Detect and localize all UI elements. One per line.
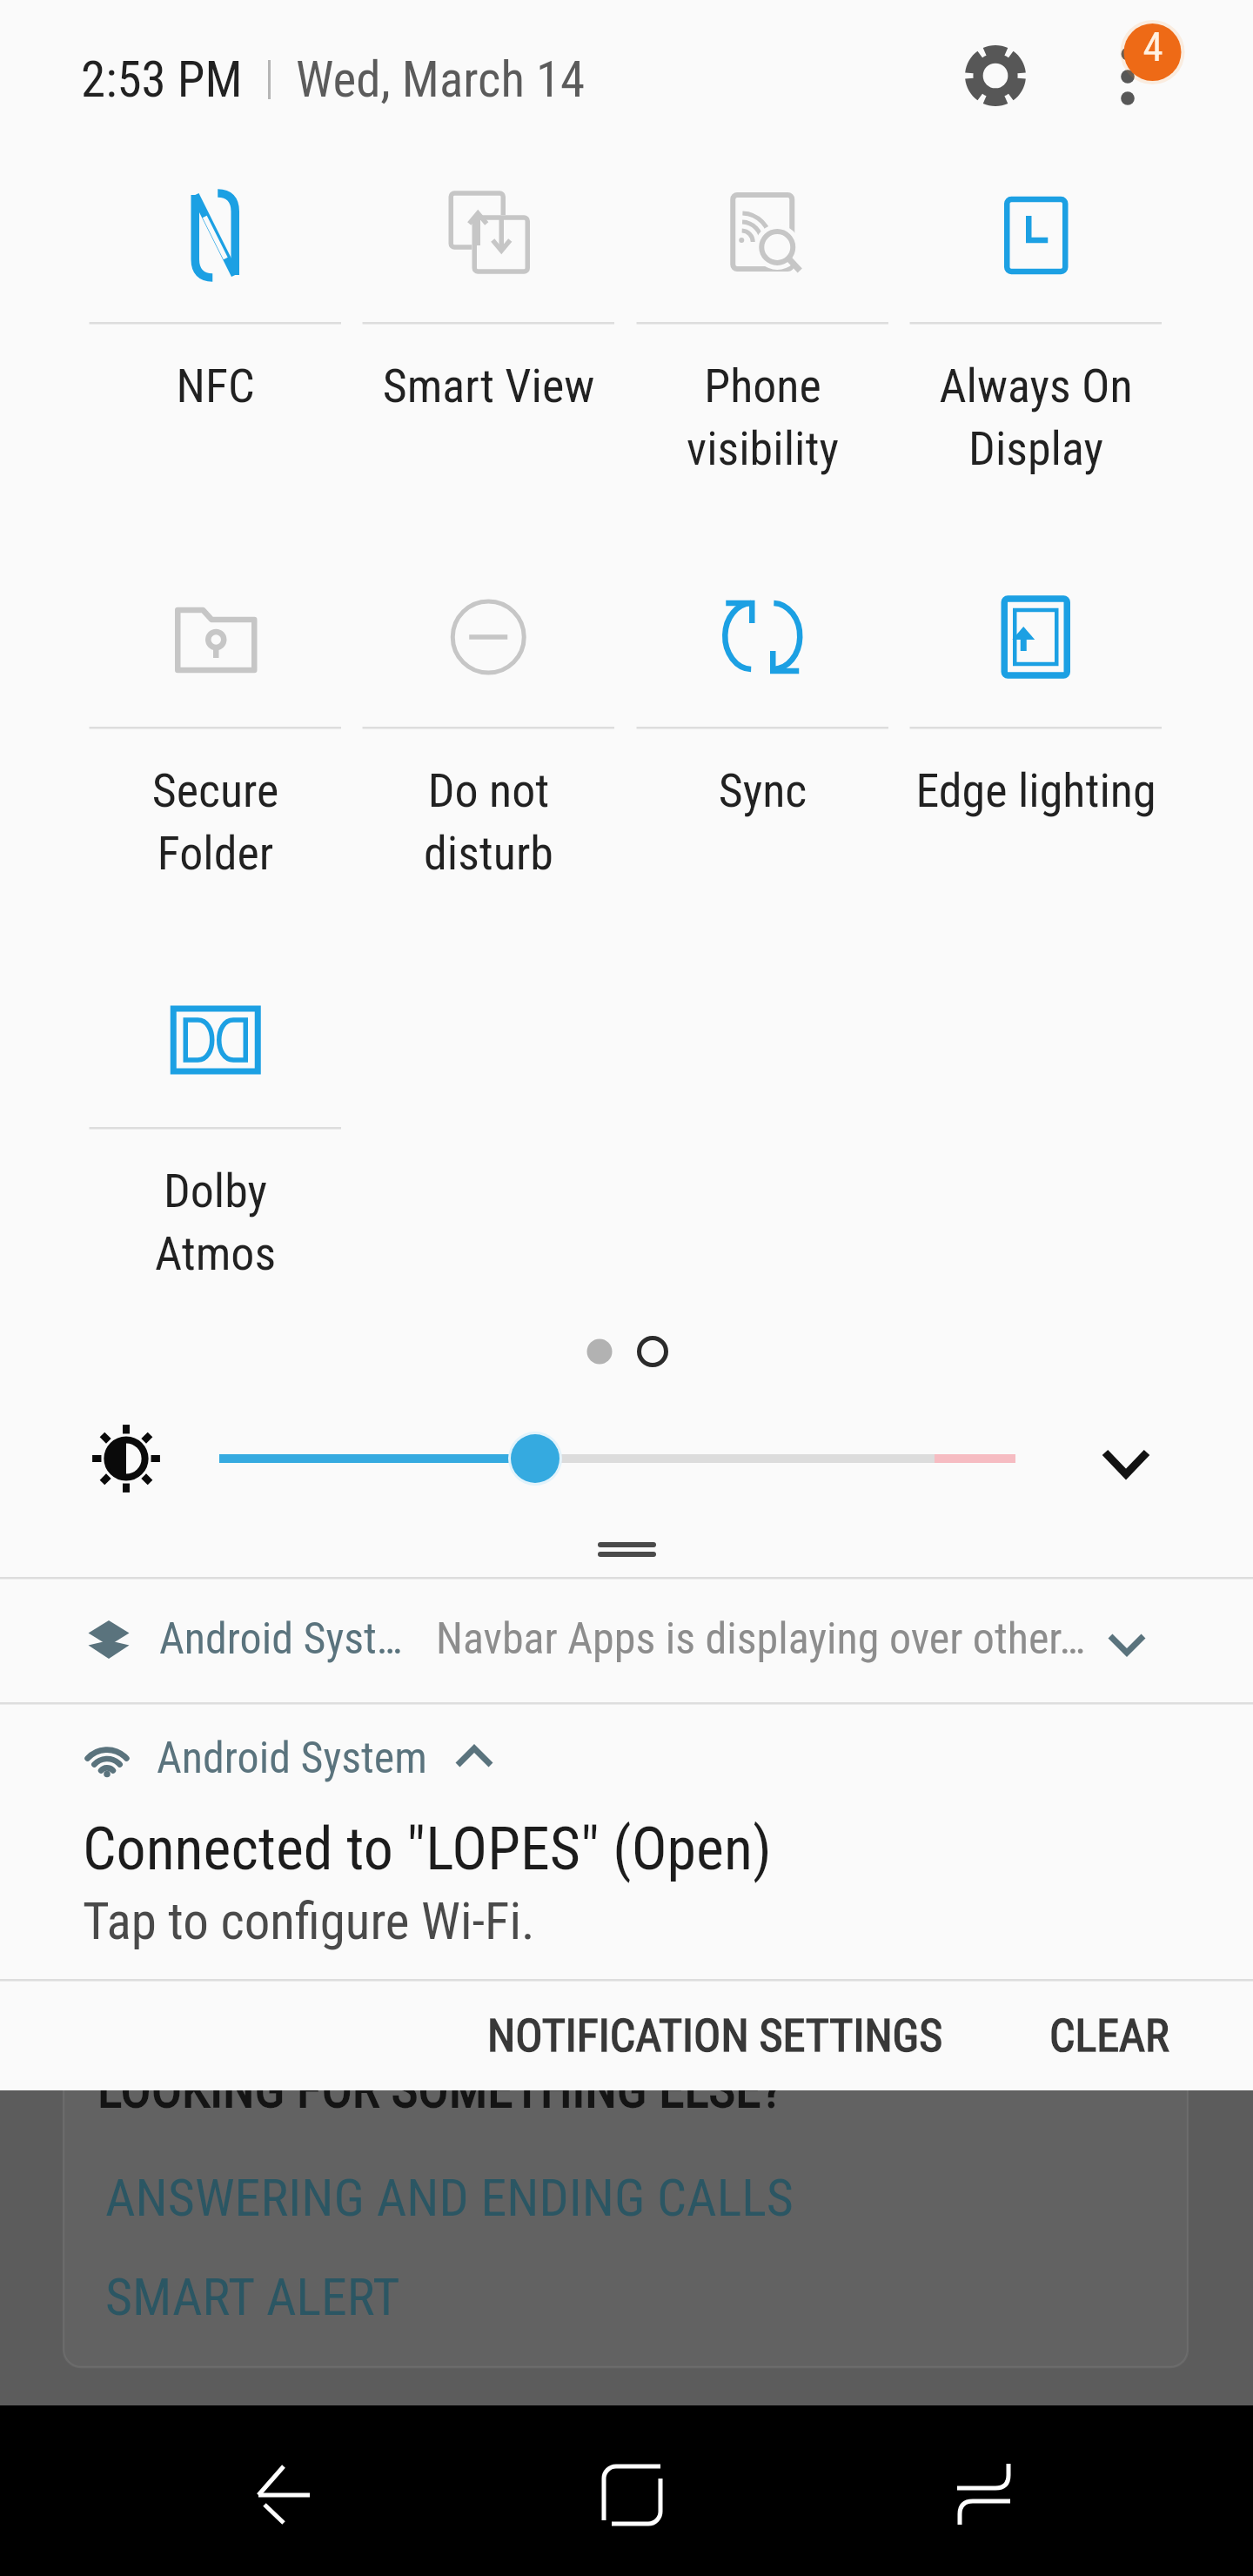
button[interactable]: Smart View [352,129,626,494]
staticText: Sync [626,763,900,818]
button[interactable]: Expand brightness [1077,1412,1175,1509]
button[interactable]: Settings [943,23,1048,128]
button[interactable]: Back [200,2438,357,2543]
staticText: Always On Display [899,359,1173,476]
staticText: Tap to configure Wi-Fi. [83,1891,535,1951]
staticText: Android Syst… [159,1613,403,1665]
staticText: CLEAR [1049,2009,1169,2063]
staticText: Do not disturb [352,763,626,881]
staticText: Navbar Apps is displaying over other… [436,1613,1086,1665]
staticText: 4 [1142,23,1163,70]
button[interactable]: Recents [931,2416,1053,2555]
staticText: Connected to "LOPES" (Open) [83,1815,772,1884]
button[interactable]: Sync [626,533,900,899]
button[interactable]: Expand notification [1095,1610,1159,1674]
staticText: Smart View [352,359,626,413]
staticText: Dolby Atmos [78,1164,352,1281]
button[interactable]: Auto brightness [86,1419,166,1499]
button[interactable]: NFC [78,129,352,494]
staticText: NFC [78,359,352,413]
button[interactable]: CLEAR [1020,1981,1199,2090]
staticText: Android System [157,1733,427,1784]
staticText: Edge lighting [899,763,1173,818]
button[interactable]: Home [578,2426,682,2555]
button[interactable]: NOTIFICATION SETTINGS [458,1981,973,2090]
staticText: Wed, March 14 [296,50,586,109]
staticText: Phone visibility [626,359,900,476]
button[interactable]: More options [1088,0,1227,139]
staticText: NOTIFICATION SETTINGS [487,2009,943,2063]
button[interactable]: Secure Folder [78,533,352,899]
button[interactable]: Edge lighting [899,533,1173,899]
button[interactable]: Phone visibility [626,129,900,494]
button[interactable]: Always On Display [899,129,1173,494]
staticText: Secure Folder [78,763,352,881]
button[interactable]: Android Syst… [0,1579,1253,1702]
staticText: 2:53 PM [81,50,243,109]
button[interactable]: Do not disturb [352,533,626,899]
staticText: LOOKING FOR SOMETHING ELSE? [97,2059,783,2119]
button[interactable]: Android System [0,1704,1253,1979]
button[interactable]: Dolby Atmos [78,934,352,1299]
staticText: SMART ALERT [105,2266,400,2327]
staticText: ANSWERING AND ENDING CALLS [105,2167,794,2228]
